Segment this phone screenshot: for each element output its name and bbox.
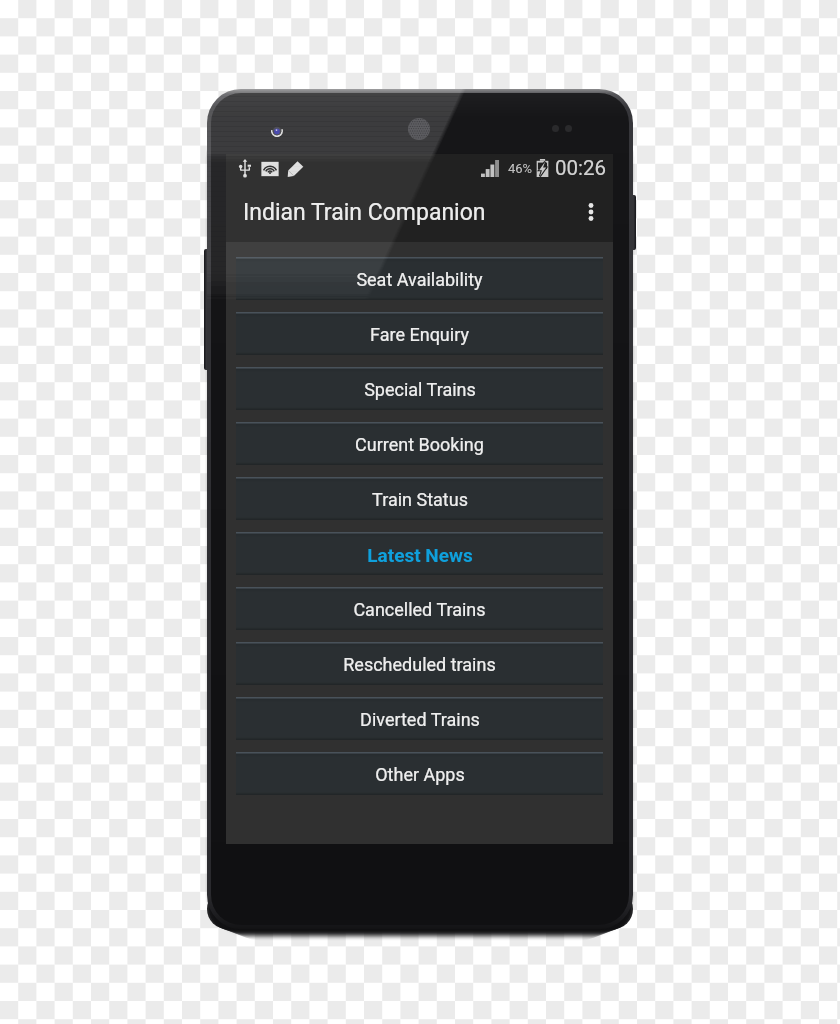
staticText: Latest News	[367, 544, 473, 566]
staticText: Current Booking	[355, 434, 484, 455]
staticText: Special Trains	[364, 379, 476, 400]
button[interactable]: Other Apps	[236, 752, 603, 807]
staticText: 00:26	[555, 156, 607, 180]
staticText: Cancelled Trains	[353, 599, 486, 620]
button[interactable]: Cancelled Trains	[236, 587, 603, 642]
staticText: 46%	[508, 161, 533, 176]
staticText: Diverted Trains	[360, 709, 480, 730]
button[interactable]: Seat Availability	[236, 257, 603, 312]
button[interactable]: Diverted Trains	[236, 697, 603, 752]
staticText: Rescheduled trains	[343, 654, 496, 675]
staticText: Indian Train Companion	[243, 199, 486, 226]
button[interactable]: Current Booking	[236, 422, 603, 477]
button[interactable]: Train Status	[236, 477, 603, 532]
button[interactable]: More options	[569, 190, 613, 234]
button[interactable]: Fare Enquiry	[236, 312, 603, 367]
staticText: Train Status	[372, 489, 468, 510]
staticText: Fare Enquiry	[370, 324, 469, 345]
staticText: Seat Availability	[356, 269, 483, 290]
staticText: Other Apps	[375, 764, 465, 785]
button[interactable]: Rescheduled trains	[236, 642, 603, 697]
button[interactable]: Latest News	[236, 532, 603, 587]
button[interactable]: Special Trains	[236, 367, 603, 422]
